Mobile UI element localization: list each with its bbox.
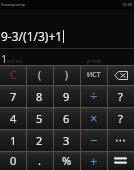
- staticText: 5: [36, 111, 43, 126]
- staticText: 8: [36, 89, 43, 104]
- staticText: ): [65, 68, 68, 82]
- button[interactable]: %: [53, 151, 80, 170]
- staticText: Калькулятор: [1, 2, 26, 7]
- staticText: 3: [63, 133, 70, 148]
- staticText: 2: [36, 133, 43, 148]
- button[interactable]: ИСТ: [80, 65, 107, 85]
- button[interactable]: 7: [0, 85, 26, 107]
- button[interactable]: Backspace: [107, 65, 134, 85]
- button[interactable]: (: [26, 65, 53, 85]
- staticText: ИСТ: [87, 70, 101, 80]
- staticText: ОЧИСТИТЬ: [7, 60, 23, 64]
- button[interactable]: 5: [26, 107, 53, 129]
- button[interactable]: C: [0, 65, 26, 85]
- button[interactable]: ): [53, 65, 80, 85]
- staticText: 4: [10, 111, 17, 126]
- button[interactable]: ?: [107, 85, 134, 107]
- staticText: +: [90, 152, 98, 170]
- button[interactable]: 9: [53, 85, 80, 107]
- button[interactable]: 4: [0, 107, 26, 129]
- staticText: −: [90, 131, 98, 149]
- button[interactable]: 1: [0, 129, 26, 151]
- button[interactable]: 3: [53, 129, 80, 151]
- staticText: ?: [118, 111, 123, 126]
- staticText: %: [62, 153, 72, 168]
- staticText: ×: [90, 109, 98, 127]
- staticText: ⋯: [115, 134, 126, 147]
- button[interactable]: −: [80, 129, 107, 151]
- button[interactable]: 2: [26, 129, 53, 151]
- button[interactable]: ×: [80, 107, 107, 129]
- staticText: 1: [1, 51, 8, 66]
- staticText: C: [10, 68, 17, 82]
- staticText: (: [38, 68, 41, 82]
- staticText: ?: [118, 89, 123, 104]
- button[interactable]: Equals: [107, 151, 134, 170]
- staticText: 1: [10, 133, 17, 148]
- staticText: ИСТОРИЯ: [87, 60, 102, 64]
- staticText: .: [38, 153, 41, 168]
- staticText: 9-3/(1/3)+1: [1, 28, 63, 44]
- staticText: ÷: [90, 87, 98, 105]
- button[interactable]: .: [26, 151, 53, 170]
- button[interactable]: ?: [107, 107, 134, 129]
- staticText: 0: [10, 153, 17, 168]
- button[interactable]: 0: [0, 151, 26, 170]
- staticText: 12:00: [122, 2, 133, 7]
- button[interactable]: 6: [53, 107, 80, 129]
- staticText: 9: [63, 89, 70, 104]
- button[interactable]: ÷: [80, 85, 107, 107]
- button[interactable]: ⋯: [107, 129, 134, 151]
- button[interactable]: +: [80, 151, 107, 170]
- button[interactable]: 8: [26, 85, 53, 107]
- staticText: 6: [63, 111, 70, 126]
- staticText: 7: [10, 89, 17, 104]
